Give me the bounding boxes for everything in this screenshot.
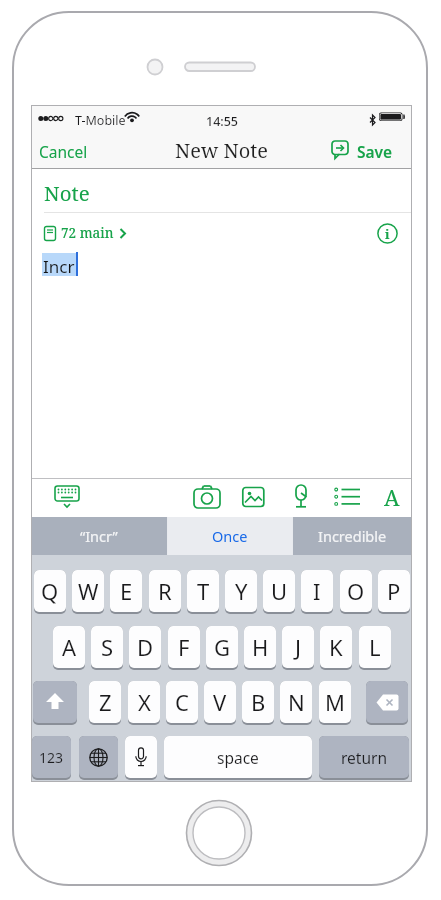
staticText: Z (99, 687, 112, 717)
button[interactable]: E (110, 570, 142, 614)
button[interactable]: 123 (32, 736, 71, 780)
button[interactable]: “Incr” (31, 517, 167, 555)
button[interactable] (366, 681, 408, 725)
staticText: H (252, 632, 269, 662)
staticText: X (138, 687, 151, 717)
button[interactable]: Y (225, 570, 257, 614)
staticText: return (341, 747, 387, 768)
button[interactable]: O (340, 570, 372, 614)
staticText: B (251, 687, 266, 717)
staticText: “Incr” (80, 526, 118, 546)
button[interactable]: return (319, 736, 409, 780)
staticText: Q (41, 576, 59, 606)
button[interactable]: space (164, 736, 312, 780)
staticText: Incr (43, 255, 75, 278)
button[interactable]: H (244, 626, 276, 670)
staticText: U (271, 576, 288, 606)
staticText: Incredible (318, 526, 387, 546)
staticText: P (387, 576, 401, 606)
staticText: V (213, 687, 227, 717)
staticText: New Note (175, 137, 268, 164)
button[interactable]: D (129, 626, 161, 670)
staticText: D (137, 632, 154, 662)
button[interactable]: V (204, 681, 236, 725)
button[interactable]: Q (34, 570, 66, 614)
button[interactable]: B (242, 681, 274, 725)
button[interactable]: S (91, 626, 123, 670)
button[interactable]: W (72, 570, 104, 614)
staticText: Note (44, 179, 90, 207)
button[interactable] (79, 736, 118, 780)
staticText: 14:55 (206, 113, 239, 130)
button[interactable]: Save (326, 132, 412, 168)
staticText: W (78, 576, 99, 606)
button[interactable]: Z (89, 681, 121, 725)
staticText: Once (212, 526, 248, 546)
button[interactable]: Cancel (31, 132, 121, 168)
staticText: A (62, 632, 77, 662)
button[interactable]: C (166, 681, 198, 725)
staticText: K (329, 632, 343, 662)
staticText: L (369, 632, 381, 662)
button[interactable]: G (206, 626, 238, 670)
button[interactable] (242, 486, 265, 508)
staticText: M (325, 687, 345, 717)
staticText: S (101, 632, 114, 662)
staticText: O (347, 576, 365, 606)
button[interactable]: R (149, 570, 181, 614)
button[interactable]: 72 main (44, 218, 127, 248)
button[interactable]: L (359, 626, 391, 670)
staticText: N (288, 687, 305, 717)
staticText: 123 (39, 748, 64, 767)
staticText: A (384, 482, 400, 512)
staticText: J (295, 632, 302, 662)
staticText: space (217, 747, 259, 768)
button[interactable]: P (378, 570, 410, 614)
button[interactable]: J (282, 626, 314, 670)
button[interactable]: M (319, 681, 351, 725)
staticText: E (120, 576, 133, 606)
staticText: T (197, 576, 210, 606)
button[interactable] (53, 483, 81, 511)
button[interactable]: A (380, 481, 404, 513)
staticText: Y (235, 576, 248, 606)
button[interactable]: Once (168, 517, 292, 555)
button[interactable]: X (128, 681, 160, 725)
button[interactable] (125, 736, 157, 780)
staticText: Save (357, 141, 393, 162)
button[interactable] (193, 484, 221, 510)
staticText: i (385, 225, 390, 243)
staticText: 72 main (61, 224, 114, 242)
staticText: R (158, 576, 172, 606)
button[interactable]: T (187, 570, 219, 614)
staticText: T-Mobile (75, 112, 126, 129)
button[interactable]: F (168, 626, 200, 670)
button[interactable]: i (377, 223, 398, 244)
staticText: C (175, 687, 189, 717)
staticText: F (178, 632, 190, 662)
button[interactable] (334, 486, 362, 508)
button[interactable] (33, 681, 77, 725)
button[interactable]: I (301, 570, 333, 614)
staticText: Cancel (39, 141, 88, 162)
staticText: I (313, 576, 321, 606)
button[interactable]: Incredible (293, 517, 412, 555)
button[interactable]: U (263, 570, 295, 614)
button[interactable]: A (53, 626, 85, 670)
button[interactable]: K (320, 626, 352, 670)
staticText: G (214, 632, 231, 662)
button[interactable]: N (280, 681, 312, 725)
button[interactable] (289, 484, 313, 511)
